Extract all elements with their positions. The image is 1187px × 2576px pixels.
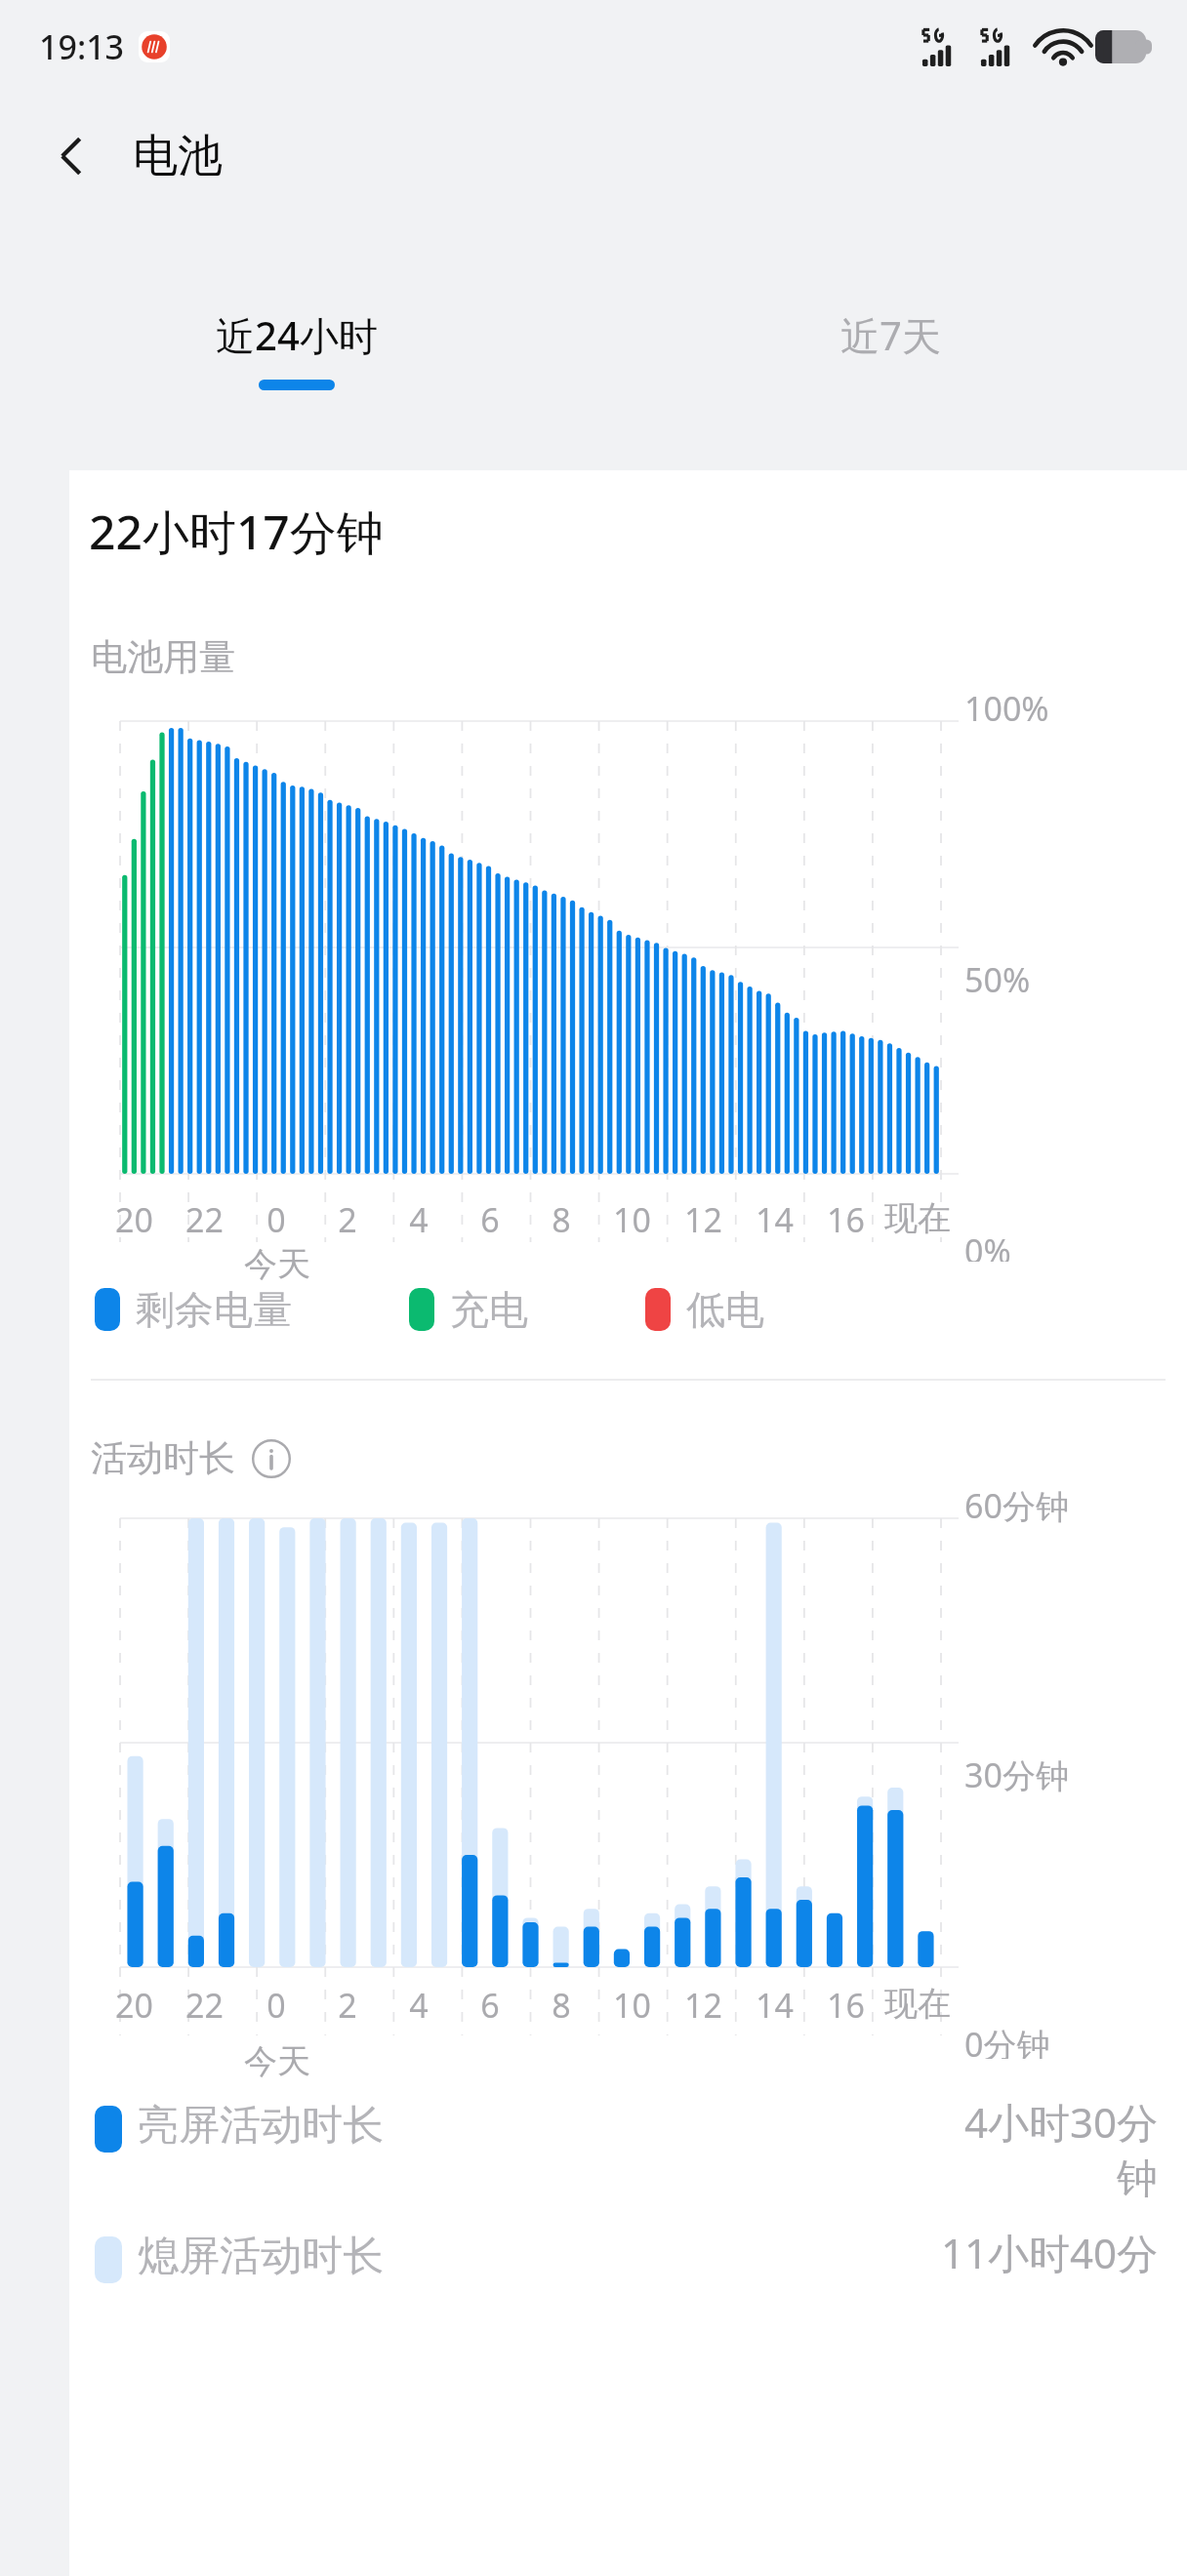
staticText: 8 — [552, 1983, 571, 2028]
button[interactable]: 低电 — [645, 1285, 764, 1334]
button[interactable]: Info — [249, 1436, 294, 1481]
staticText: 22小时17分钟 — [89, 500, 384, 564]
staticText: 16 — [827, 1197, 865, 1242]
staticText: 2 — [338, 1983, 357, 2028]
button[interactable]: 近7天 — [593, 219, 1187, 470]
staticText: 近24小时 — [216, 308, 378, 362]
button[interactable]: 熄屏活动时长 — [95, 2225, 1158, 2283]
button[interactable]: 亮屏活动时长 — [95, 2094, 1158, 2205]
staticText: 8 — [552, 1197, 571, 1242]
staticText: 剩余电量 — [136, 1285, 292, 1334]
staticText: 现在 — [884, 1197, 951, 1239]
staticText: 现在 — [884, 1983, 951, 2025]
staticText: 10 — [613, 1197, 651, 1242]
staticText: 50% — [964, 957, 1031, 1002]
staticText: 12 — [684, 1983, 722, 2028]
staticText: 电池 — [133, 128, 223, 184]
staticText: 4 — [409, 1983, 429, 2028]
staticText: 22 — [185, 1983, 224, 2028]
staticText: 10 — [613, 1983, 651, 2028]
staticText: 4 — [409, 1197, 429, 1242]
button[interactable]: 充电 — [409, 1285, 528, 1334]
staticText: 4小时30分 钟 — [963, 2094, 1158, 2205]
staticText: 12 — [684, 1197, 722, 1242]
staticText: 近7天 — [840, 308, 941, 362]
staticText: 30分钟 — [964, 1752, 1069, 1797]
staticText: 14 — [756, 1197, 794, 1242]
staticText: 20 — [115, 1983, 153, 2028]
staticText: 低电 — [686, 1285, 764, 1334]
staticText: 6 — [480, 1197, 500, 1242]
staticText: 充电 — [450, 1285, 528, 1334]
staticText: 16 — [827, 1983, 865, 2028]
button[interactable]: 剩余电量 — [95, 1285, 292, 1334]
staticText: 2 — [338, 1197, 357, 1242]
staticText: 6 — [480, 1983, 500, 2028]
staticText: 0 — [266, 1197, 286, 1242]
staticText: 100% — [964, 686, 1049, 731]
staticText: 60分钟 — [964, 1483, 1069, 1528]
staticText: 11小时40分 — [940, 2225, 1158, 2280]
staticText: 今天 — [244, 1243, 310, 1285]
staticText: 亮屏活动时长 — [138, 2100, 384, 2152]
staticText: 22 — [185, 1197, 224, 1242]
staticText: 0% — [964, 1228, 1011, 1262]
staticText: 电池用量 — [91, 634, 235, 680]
button[interactable]: Back — [31, 115, 113, 197]
staticText: 熄屏活动时长 — [138, 2231, 384, 2282]
staticText: 今天 — [244, 2040, 310, 2082]
staticText: 14 — [756, 1983, 794, 2028]
staticText: 活动时长 — [91, 1435, 235, 1481]
staticText: 0 — [266, 1983, 286, 2028]
staticText: 0分钟 — [964, 2022, 1050, 2059]
button[interactable]: 近24小时 — [0, 219, 593, 470]
staticText: 20 — [115, 1197, 153, 1242]
staticText: 19:13 — [39, 24, 125, 69]
